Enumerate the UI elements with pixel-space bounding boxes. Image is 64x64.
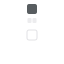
button[interactable]	[27, 4, 37, 14]
button[interactable]	[32, 18, 36, 23]
button[interactable]	[27, 18, 31, 23]
